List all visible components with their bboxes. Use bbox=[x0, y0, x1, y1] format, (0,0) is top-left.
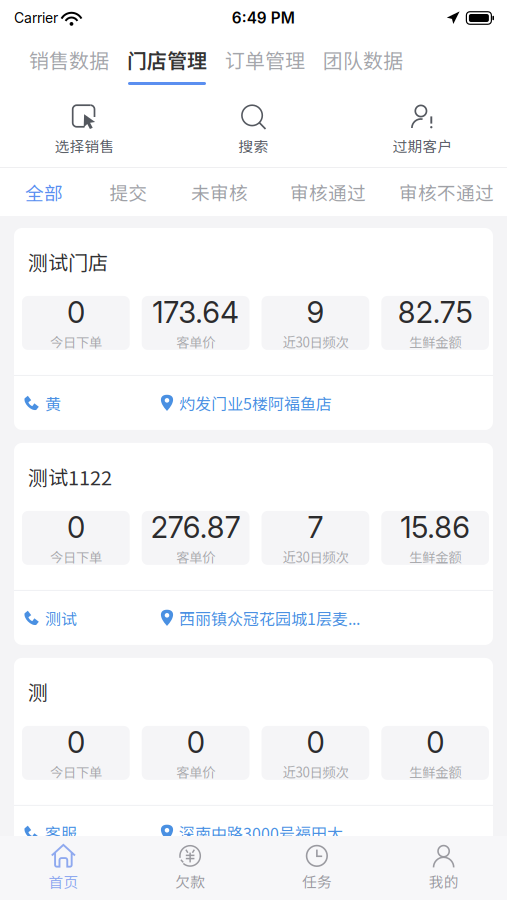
staticText: 生鲜金额 bbox=[409, 547, 461, 566]
staticText: 近30日频次 bbox=[282, 762, 348, 781]
button[interactable]: 订单管理 bbox=[216, 36, 314, 88]
staticText: Carrier bbox=[14, 9, 58, 26]
button[interactable]: 任务 bbox=[253, 836, 380, 900]
button[interactable]: 过期客户 bbox=[338, 88, 507, 167]
staticText: 审核不通过 bbox=[399, 178, 494, 205]
staticText: 今日下单 bbox=[50, 762, 102, 781]
staticText: 西丽镇众冠花园城1层麦... bbox=[179, 606, 360, 629]
staticText: 今日下单 bbox=[50, 332, 102, 351]
staticText: 团队数据 bbox=[323, 45, 403, 74]
staticText: 订单管理 bbox=[225, 45, 305, 74]
button[interactable]: 全部 bbox=[0, 168, 88, 216]
button[interactable]: 客服 bbox=[22, 806, 160, 860]
staticText: 0 bbox=[426, 724, 444, 760]
staticText: 客服 bbox=[45, 821, 77, 844]
button[interactable]: 灼发门业5楼阿福鱼店 bbox=[160, 376, 332, 430]
staticText: 深南中路3000号福田大... bbox=[179, 821, 355, 844]
staticText: 0 bbox=[306, 724, 324, 760]
staticText: 首页 bbox=[48, 871, 78, 892]
staticText: 搜索 bbox=[238, 135, 268, 156]
staticText: 客单价 bbox=[176, 547, 215, 566]
button[interactable]: 选择销售 bbox=[0, 88, 169, 167]
staticText: 全部 bbox=[25, 178, 63, 205]
staticText: 测试门店 bbox=[28, 247, 108, 276]
staticText: 测试1122 bbox=[28, 462, 112, 491]
staticText: 0 bbox=[67, 295, 85, 330]
staticText: 灼发门业5楼阿福鱼店 bbox=[179, 391, 332, 415]
staticText: 欠款 bbox=[175, 870, 205, 892]
staticText: 黄 bbox=[45, 391, 61, 415]
staticText: 7 bbox=[307, 509, 323, 545]
staticText: 9 bbox=[306, 295, 324, 330]
staticText: 276.87 bbox=[151, 509, 241, 545]
staticText: 15.86 bbox=[400, 509, 470, 545]
staticText: 0 bbox=[187, 724, 205, 760]
button[interactable]: 欠款 bbox=[127, 836, 254, 900]
staticText: 我的 bbox=[429, 870, 459, 892]
button[interactable]: 提交 bbox=[88, 168, 169, 216]
button[interactable]: 首页 bbox=[0, 836, 127, 900]
staticText: 0 bbox=[67, 724, 85, 760]
staticText: 门店管理 bbox=[127, 45, 207, 74]
staticText: 过期客户 bbox=[392, 135, 452, 156]
staticText: 未审核 bbox=[191, 178, 248, 205]
button[interactable]: 团队数据 bbox=[314, 36, 412, 88]
staticText: 173.64 bbox=[152, 295, 239, 330]
button[interactable]: 销售数据 bbox=[20, 36, 118, 88]
staticText: 任务 bbox=[302, 870, 332, 892]
staticText: 0 bbox=[67, 509, 85, 545]
staticText: 82.75 bbox=[398, 295, 473, 330]
staticText: 选择销售 bbox=[54, 135, 114, 156]
staticText: 生鲜金额 bbox=[409, 332, 461, 351]
staticText: 提交 bbox=[109, 178, 147, 205]
button[interactable]: 西丽镇众冠花园城1层麦... bbox=[160, 591, 360, 645]
button[interactable]: 深南中路3000号福田大... bbox=[160, 806, 355, 860]
staticText: 测试 bbox=[45, 606, 77, 629]
staticText: 6:49 PM bbox=[232, 9, 295, 27]
staticText: 生鲜金额 bbox=[409, 762, 461, 781]
staticText: 近30日频次 bbox=[282, 547, 348, 566]
button[interactable]: 审核通过 bbox=[270, 168, 386, 216]
button[interactable]: 我的 bbox=[380, 836, 507, 900]
staticText: 近30日频次 bbox=[282, 332, 348, 351]
staticText: 客单价 bbox=[176, 332, 215, 351]
button[interactable]: 测试 bbox=[22, 591, 160, 645]
staticText: 测 bbox=[28, 677, 48, 706]
staticText: 今日下单 bbox=[50, 547, 102, 566]
button[interactable]: 未审核 bbox=[169, 168, 270, 216]
staticText: 审核通过 bbox=[290, 178, 366, 205]
button[interactable]: 黄 bbox=[22, 376, 160, 430]
staticText: 销售数据 bbox=[29, 45, 109, 74]
button[interactable]: 搜索 bbox=[169, 88, 338, 167]
button[interactable]: 门店管理 bbox=[118, 36, 216, 88]
staticText: 客单价 bbox=[176, 762, 215, 781]
button[interactable]: 审核不通过 bbox=[386, 168, 507, 216]
